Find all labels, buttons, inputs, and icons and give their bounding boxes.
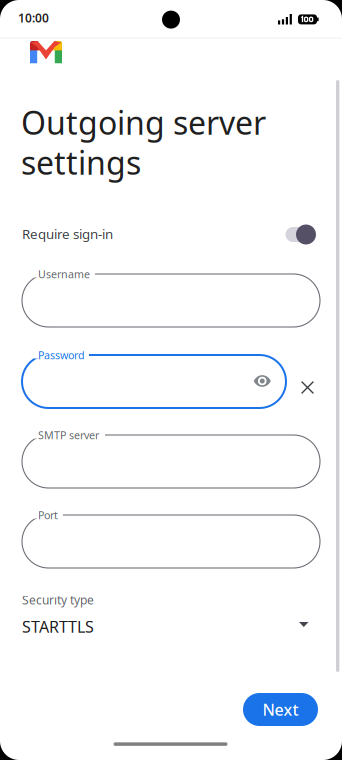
staticText: 10:00 — [18, 10, 49, 26]
staticText: settings — [21, 141, 141, 183]
staticText: Security type — [22, 592, 94, 608]
button[interactable]: Clear — [301, 381, 314, 394]
staticText: Require sign-in — [22, 225, 113, 243]
button[interactable]: Show password — [253, 374, 271, 388]
button[interactable]: Next — [243, 693, 318, 726]
staticText: Outgoing server — [21, 101, 266, 143]
button[interactable]: Require sign-in — [22, 221, 320, 253]
staticText: Port — [38, 508, 58, 522]
button[interactable]: STARTTLS — [22, 611, 320, 637]
staticText: STARTTLS — [22, 616, 94, 637]
staticText: SMTP server — [38, 428, 99, 442]
staticText: Password — [38, 348, 85, 362]
staticText: Username — [38, 267, 90, 281]
staticText: Next — [262, 699, 298, 720]
